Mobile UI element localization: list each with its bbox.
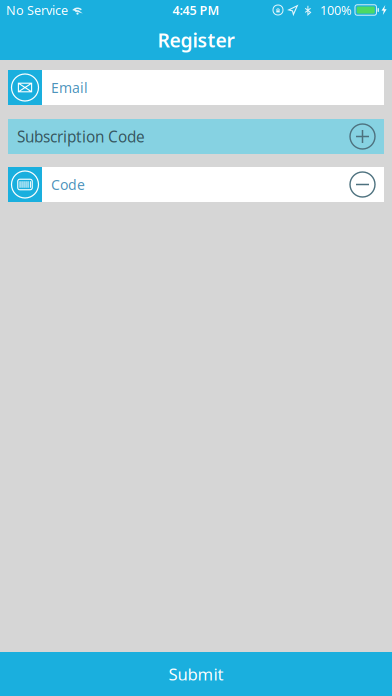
button[interactable]: Email	[8, 70, 384, 105]
button[interactable]: Submit	[0, 652, 392, 696]
staticText: Submit	[168, 663, 223, 685]
staticText: Subscription Code	[17, 126, 145, 147]
staticText: 4:45 PM	[172, 1, 219, 19]
staticText: Email	[51, 78, 88, 97]
staticText: Code	[51, 175, 85, 194]
staticText: 100%	[320, 1, 352, 19]
button[interactable]: Subscription Code	[8, 119, 384, 154]
staticText: Register	[157, 27, 234, 53]
button[interactable]: Code	[8, 167, 384, 202]
staticText: No Service	[6, 1, 68, 19]
